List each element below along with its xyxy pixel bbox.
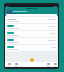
button[interactable]: Search (12, 62, 19, 67)
button[interactable]: Notifications (44, 62, 51, 67)
button[interactable] (6, 38, 57, 44)
button[interactable] (6, 17, 57, 23)
button[interactable]: Home (5, 62, 12, 67)
button[interactable]: Add (30, 58, 34, 62)
button[interactable] (6, 45, 57, 51)
button[interactable]: Profile (51, 62, 58, 67)
button[interactable] (6, 24, 57, 30)
button[interactable] (6, 31, 57, 37)
button[interactable] (7, 10, 27, 15)
